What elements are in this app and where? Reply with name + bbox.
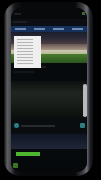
button[interactable] bbox=[30, 26, 49, 32]
button[interactable]: Open bbox=[80, 123, 85, 128]
button[interactable] bbox=[17, 56, 39, 59]
button[interactable] bbox=[17, 50, 39, 53]
button[interactable] bbox=[11, 26, 30, 32]
button[interactable] bbox=[17, 44, 39, 47]
button[interactable] bbox=[17, 53, 39, 56]
button[interactable] bbox=[49, 26, 68, 32]
button[interactable] bbox=[11, 19, 87, 26]
button[interactable] bbox=[17, 47, 39, 50]
button[interactable] bbox=[68, 26, 87, 32]
button[interactable] bbox=[17, 59, 39, 62]
button[interactable]: Open bbox=[11, 118, 87, 134]
button[interactable]: App bbox=[13, 163, 18, 168]
button[interactable] bbox=[17, 38, 39, 41]
button[interactable] bbox=[17, 41, 39, 44]
button[interactable] bbox=[17, 62, 39, 65]
